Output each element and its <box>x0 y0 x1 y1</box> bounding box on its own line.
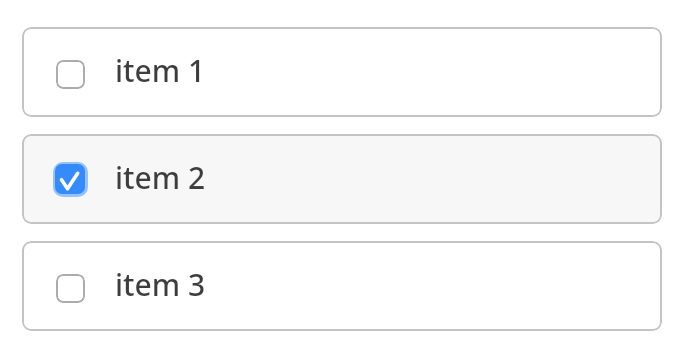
button[interactable]: item 3, not checked <box>22 241 662 331</box>
staticText: item 2 <box>115 157 206 198</box>
button[interactable]: item 1, not checked <box>52 54 88 90</box>
staticText: item 3 <box>115 264 206 305</box>
staticText: item 1 <box>115 50 206 91</box>
button[interactable]: item 2, checked <box>52 161 88 197</box>
button[interactable]: item 1, not checked <box>22 27 662 117</box>
button[interactable]: item 3, not checked <box>52 268 88 304</box>
button[interactable]: item 2, checked <box>22 134 662 224</box>
